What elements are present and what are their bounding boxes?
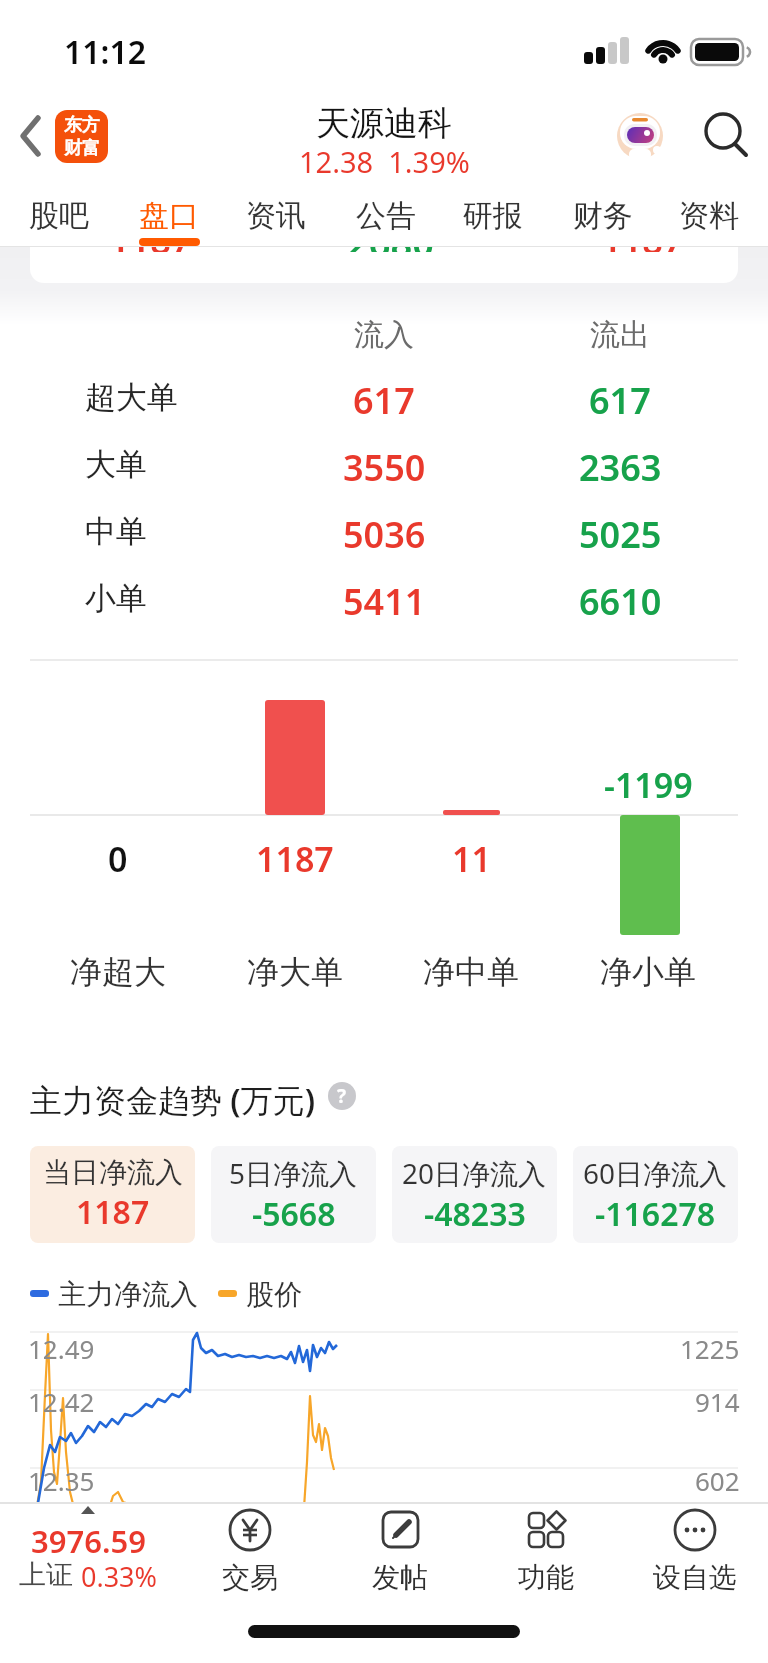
staticText: 财富: [64, 137, 100, 160]
staticText: -5668: [252, 1192, 336, 1236]
button[interactable]: 盘口: [115, 186, 223, 246]
staticText: 3550: [343, 443, 426, 485]
staticText: 3976.59: [31, 1520, 146, 1558]
staticText: 1225: [680, 1331, 740, 1359]
button[interactable]: [10, 108, 54, 168]
staticText: 11:12: [64, 30, 147, 66]
staticText: 2680: [347, 247, 434, 252]
staticText: -116278: [595, 1192, 716, 1236]
staticText: 主力净流入: [58, 1277, 198, 1312]
staticText: 617: [589, 376, 651, 418]
button[interactable]: [616, 112, 664, 160]
staticText: -1199: [604, 762, 693, 802]
staticText: 当日净流入: [43, 1155, 183, 1190]
staticText: 净大单: [247, 952, 343, 992]
staticText: 5日净流入: [229, 1154, 358, 1192]
staticText: 上证: [19, 1558, 73, 1592]
button[interactable]: 研报: [439, 186, 547, 246]
staticText: 914: [695, 1384, 740, 1412]
button[interactable]: 公告: [332, 186, 440, 246]
button[interactable]: 3976.59: [8, 1502, 168, 1597]
staticText: 中单: [85, 512, 147, 551]
staticText: 12.49: [28, 1331, 95, 1359]
staticText: ?: [337, 1083, 347, 1109]
button[interactable]: 5日净流入: [211, 1146, 376, 1243]
staticText: 财务: [573, 197, 633, 235]
staticText: 资料: [679, 197, 739, 235]
staticText: 小单: [85, 579, 147, 618]
staticText: 5411: [343, 577, 426, 619]
staticText: 5036: [343, 510, 426, 552]
staticText: 1187: [601, 247, 684, 252]
staticText: 功能: [518, 1560, 574, 1594]
staticText: 交易: [222, 1560, 278, 1594]
staticText: 12.42: [28, 1384, 95, 1412]
button[interactable]: 资料: [655, 186, 763, 246]
button[interactable]: 60日净流入: [573, 1146, 738, 1243]
staticText: 617: [353, 376, 415, 418]
staticText: 净中单: [423, 952, 519, 992]
button[interactable]: 20日净流入: [392, 1146, 557, 1243]
staticText: 6610: [579, 577, 662, 619]
staticText: 资讯: [246, 197, 306, 235]
staticText: 超大单: [85, 378, 178, 417]
staticText: 主力资金趋势 (万元): [30, 1078, 316, 1118]
staticText: 2363: [579, 443, 662, 485]
staticText: 流出: [590, 316, 650, 352]
staticText: 5025: [579, 510, 662, 552]
staticText: 盘口: [139, 197, 199, 235]
staticText: 11: [452, 836, 491, 876]
button[interactable]: ?: [328, 1082, 356, 1110]
staticText: 流入: [354, 316, 414, 352]
button[interactable]: [700, 108, 756, 164]
staticText: 研报: [463, 197, 523, 235]
button[interactable]: 东方: [55, 110, 108, 163]
staticText: 设自选: [653, 1560, 737, 1594]
staticText: 1187: [76, 1190, 150, 1234]
staticText: 公告: [356, 197, 416, 235]
staticText: 20日净流入: [402, 1154, 547, 1192]
staticText: 股吧: [29, 197, 89, 235]
staticText: -48233: [424, 1192, 526, 1236]
button[interactable]: 资讯: [222, 186, 330, 246]
button[interactable]: 财务: [549, 186, 657, 246]
staticText: 净超大: [70, 952, 166, 992]
staticText: 天源迪科: [316, 102, 452, 142]
button[interactable]: 设自选: [623, 1502, 767, 1597]
staticText: 602: [695, 1463, 740, 1491]
staticText: 12.35: [28, 1463, 95, 1491]
staticText: 股价: [246, 1277, 302, 1312]
staticText: 0: [108, 836, 128, 876]
staticText: 1187: [109, 247, 192, 252]
staticText: 12.38 1.39%: [299, 142, 470, 174]
button[interactable]: 发帖: [328, 1502, 472, 1597]
staticText: 1187: [256, 836, 334, 876]
button[interactable]: 股吧: [5, 186, 113, 246]
staticText: 东方: [64, 114, 100, 137]
button[interactable]: 交易: [178, 1502, 322, 1597]
staticText: 大单: [85, 445, 147, 484]
staticText: 60日净流入: [583, 1154, 728, 1192]
button[interactable]: 功能: [474, 1502, 618, 1597]
staticText: 净小单: [600, 952, 696, 992]
button[interactable]: 当日净流入: [30, 1146, 195, 1243]
staticText: 发帖: [372, 1560, 428, 1594]
staticText: 0.33%: [81, 1558, 158, 1592]
